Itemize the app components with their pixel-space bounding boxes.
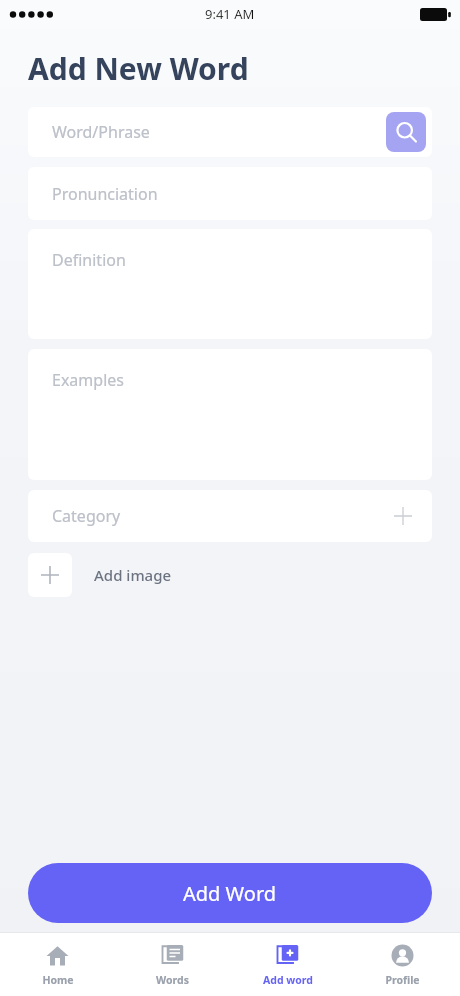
staticText: Examples [52,369,124,391]
button[interactable]: Add Word [28,863,432,923]
button[interactable]: Definition [28,229,432,339]
button[interactable]: Examples [28,349,432,480]
button[interactable]: Profile [345,933,460,996]
staticText: Home [42,973,74,987]
staticText: Add image [94,565,172,585]
staticText: Add New Word [28,48,249,89]
staticText: 9:41 AM [205,5,255,23]
staticText: Word/Phrase [52,121,150,143]
staticText: Definition [52,249,126,271]
button[interactable]: Pronunciation [28,167,432,220]
staticText: Words [156,973,189,987]
button[interactable]: Search [386,112,426,152]
staticText: Category [52,505,121,527]
staticText: Pronunciation [52,183,158,205]
button[interactable]: Words [115,933,230,996]
button[interactable]: Home [0,933,115,996]
staticText: Profile [385,973,420,987]
button[interactable]: Add image [28,553,172,597]
staticText: Add word [263,973,313,987]
staticText: Add Word [183,880,277,907]
button[interactable]: Category [28,490,432,542]
button[interactable]: Add word [230,933,345,996]
button[interactable]: Word/Phrase [28,107,432,157]
